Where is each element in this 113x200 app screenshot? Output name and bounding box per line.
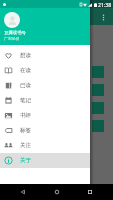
button[interactable]: Home — [49, 184, 65, 200]
staticText: 关于 — [20, 157, 31, 164]
button[interactable]: 标签 — [0, 123, 90, 138]
button[interactable] — [92, 120, 104, 132]
button[interactable]: Recents — [82, 184, 98, 200]
button[interactable] — [92, 66, 104, 78]
button[interactable]: More options — [97, 11, 109, 23]
button[interactable]: 在读 — [0, 63, 90, 78]
button[interactable]: 关注 — [0, 138, 90, 153]
button[interactable] — [92, 102, 104, 114]
staticText: 标签 — [20, 127, 31, 134]
staticText: 在读 — [20, 67, 31, 74]
button[interactable]: 关于 — [0, 153, 90, 168]
staticText: 书评 — [20, 112, 31, 119]
staticText: 关注 — [20, 142, 31, 149]
button[interactable]: 想读 — [0, 48, 90, 63]
button[interactable]: Back — [15, 184, 31, 200]
button[interactable]: 笔记 — [0, 93, 90, 108]
button[interactable]: 书评 — [0, 108, 90, 123]
staticText: 豆瓣读书号 — [4, 30, 26, 36]
staticText: 已读 — [20, 82, 31, 89]
button[interactable] — [92, 84, 104, 96]
staticText: 想读 — [20, 52, 31, 59]
staticText: 21:38 — [98, 1, 112, 8]
button[interactable]: 已读 — [0, 78, 90, 93]
staticText: 广东深圳 — [4, 36, 20, 41]
staticText: 笔记 — [20, 97, 31, 104]
